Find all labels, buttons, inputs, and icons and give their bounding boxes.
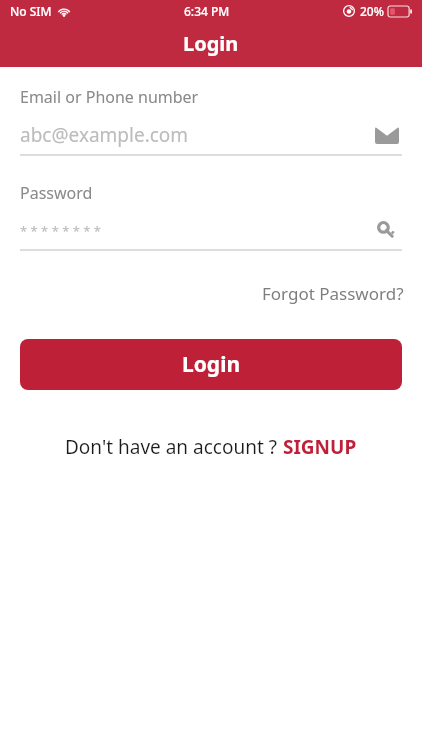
staticText: Password (20, 182, 93, 204)
button[interactable]: Show password (372, 216, 402, 246)
button[interactable]: abc@example.com (20, 120, 402, 150)
button[interactable]: Forgot Password? (262, 280, 422, 307)
button[interactable]: SIGNUP (283, 434, 357, 460)
staticText: abc@example.com (20, 122, 189, 148)
button[interactable]: * * * * * * * * (20, 216, 402, 246)
staticText: No SIM (10, 3, 52, 19)
staticText: SIGNUP (283, 434, 357, 460)
button[interactable]: Login (20, 339, 402, 390)
staticText: Don't have an account ? (65, 434, 277, 460)
staticText: Login (183, 30, 239, 57)
staticText: 6:34 PM (184, 3, 230, 19)
staticText: Forgot Password? (262, 282, 404, 305)
staticText: * * * * * * * * (20, 222, 101, 240)
staticText: Login (182, 350, 241, 379)
staticText: 20% (360, 3, 384, 19)
button[interactable]: Email (372, 120, 402, 150)
staticText: Email or Phone number (20, 86, 199, 108)
